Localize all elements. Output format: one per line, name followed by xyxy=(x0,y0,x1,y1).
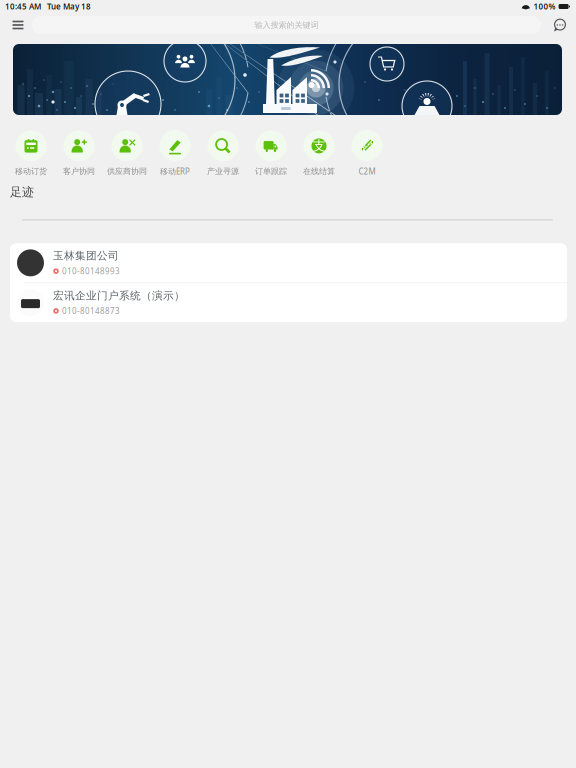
button[interactable]: 玉林集团公司 xyxy=(10,243,567,282)
staticText: 支 xyxy=(312,138,325,154)
staticText: 在线结算 xyxy=(303,166,335,176)
button[interactable]: Messages xyxy=(553,18,567,32)
staticText: 输入搜索的关键词 xyxy=(254,20,318,30)
staticText: C2M xyxy=(358,166,375,177)
staticText: 移动ERP xyxy=(160,166,190,177)
button[interactable]: 宏讯企业门户系统（演示） xyxy=(10,283,567,322)
staticText: 订单跟踪 xyxy=(255,166,287,176)
button[interactable]: C2M xyxy=(343,130,391,177)
staticText: 客户协同 xyxy=(63,166,95,176)
staticText: 玉林集团公司 xyxy=(53,249,119,262)
button[interactable]: 移动ERP xyxy=(151,130,199,177)
staticText: 供应商协同 xyxy=(107,166,147,176)
staticText: 10:45 AM xyxy=(5,1,41,12)
staticText: Tue May 18 xyxy=(47,1,91,12)
staticText: 产业寻源 xyxy=(207,166,239,176)
staticText: 足迹 xyxy=(10,185,34,199)
button[interactable]: 客户协同 xyxy=(55,130,103,176)
button[interactable]: 移动订货 xyxy=(7,130,55,176)
button[interactable]: Menu xyxy=(8,13,28,37)
staticText: 100% xyxy=(534,1,556,12)
staticText: 宏讯企业门户系统（演示） xyxy=(53,289,185,302)
button[interactable]: 订单跟踪 xyxy=(247,130,295,176)
button[interactable]: 支 xyxy=(295,130,343,176)
staticText: 移动订货 xyxy=(15,166,47,176)
staticText: 010-80148993 xyxy=(62,266,120,276)
button[interactable]: 输入搜索的关键词 xyxy=(32,16,541,34)
staticText: 010-80148873 xyxy=(62,306,120,316)
button[interactable]: 产业寻源 xyxy=(199,130,247,176)
button[interactable]: 供应商协同 xyxy=(103,130,151,176)
